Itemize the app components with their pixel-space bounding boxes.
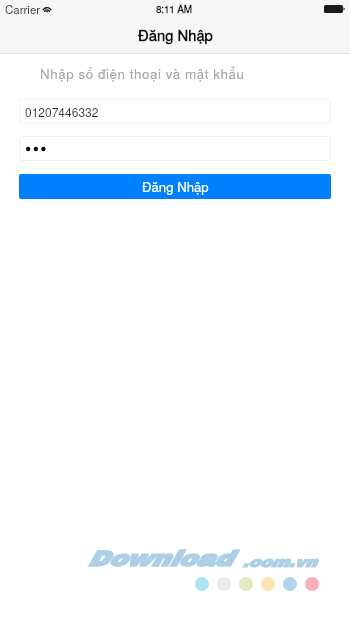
staticText: 8:11 AM xyxy=(156,2,192,16)
staticText: 01207446332 xyxy=(25,103,99,120)
other: Wi-Fi signal xyxy=(42,4,52,12)
other: Battery full xyxy=(324,5,345,13)
staticText: .com.vn xyxy=(242,555,316,570)
staticText: Carrier xyxy=(5,1,41,17)
staticText: Download xyxy=(87,548,232,571)
staticText: Nhập số điện thoại và mật khẩu xyxy=(40,64,245,83)
button[interactable] xyxy=(19,136,331,161)
staticText: Đăng Nhập xyxy=(142,177,209,196)
button[interactable]: 01207446332 xyxy=(19,99,331,124)
staticText: Đăng Nhập xyxy=(138,24,213,45)
button[interactable]: Đăng Nhập xyxy=(19,174,331,199)
